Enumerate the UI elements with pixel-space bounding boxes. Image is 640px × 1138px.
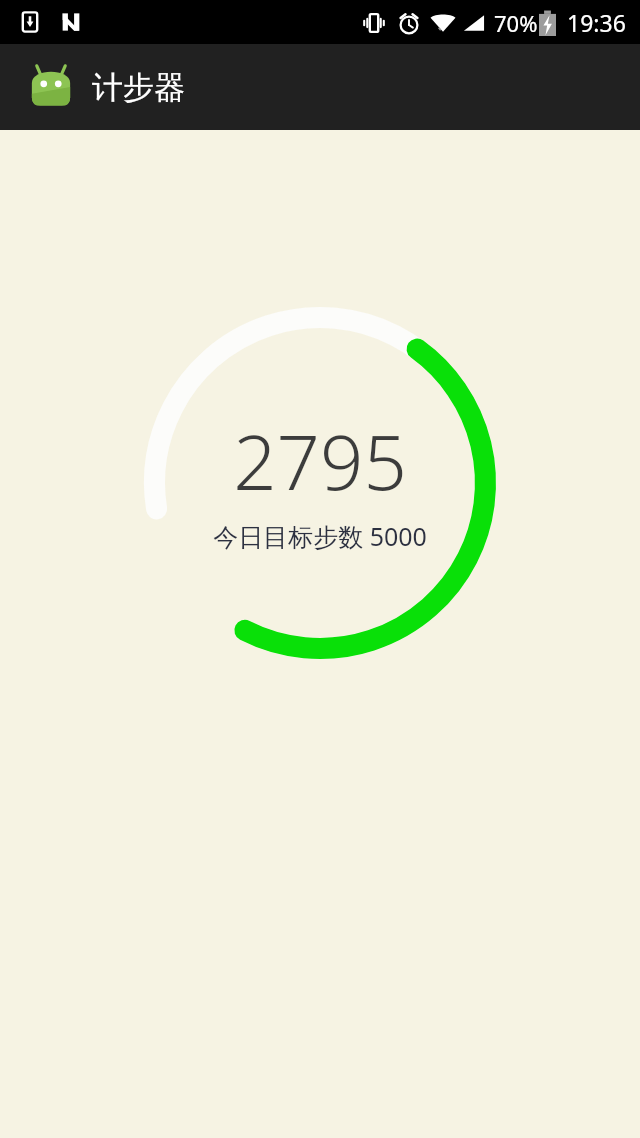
button[interactable]: 2795 — [144, 307, 496, 659]
staticText: 2795 — [233, 409, 407, 513]
staticText: 计步器 — [92, 68, 185, 107]
staticText: 19:36 — [567, 7, 626, 38]
staticText: 今日目标步数 5000 — [213, 519, 427, 553]
button[interactable]: App icon — [22, 58, 80, 116]
staticText: 70% — [494, 8, 538, 38]
